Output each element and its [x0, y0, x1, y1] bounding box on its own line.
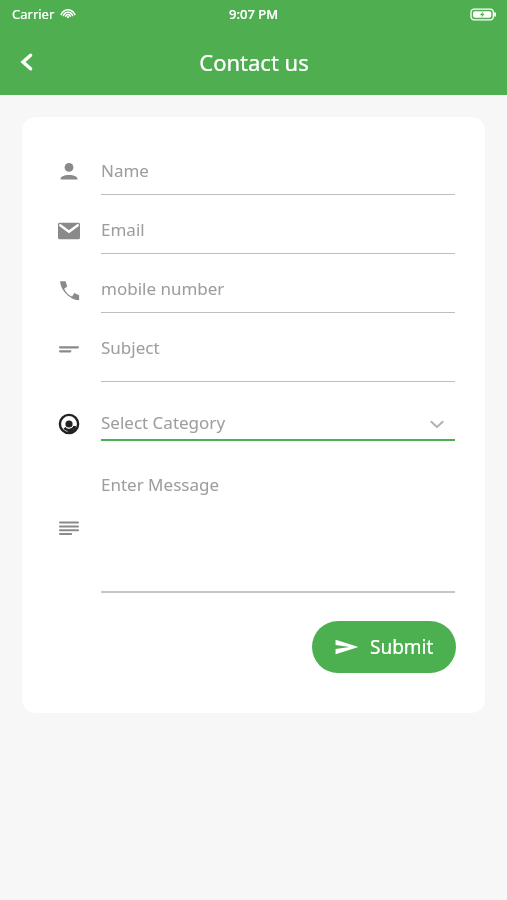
staticText: Enter Message — [101, 473, 219, 496]
staticText: Subject — [101, 336, 160, 359]
staticText: mobile number — [101, 277, 225, 300]
button[interactable]: Enter Message — [22, 455, 485, 607]
staticText: Name — [101, 159, 149, 182]
staticText: Carrier — [12, 5, 55, 23]
staticText: Select Category — [101, 411, 226, 434]
button[interactable]: Back — [0, 35, 54, 89]
staticText: 9:07 PM — [229, 5, 279, 23]
button[interactable]: Submit — [312, 621, 456, 673]
button[interactable]: Email — [22, 208, 485, 267]
staticText: Contact us — [199, 47, 309, 77]
staticText: Submit — [370, 634, 434, 660]
button[interactable]: Select Category — [22, 405, 485, 455]
staticText: Email — [101, 218, 145, 241]
button[interactable]: Subject — [22, 326, 485, 389]
button[interactable]: mobile number — [22, 267, 485, 326]
button[interactable]: Name — [22, 149, 485, 208]
